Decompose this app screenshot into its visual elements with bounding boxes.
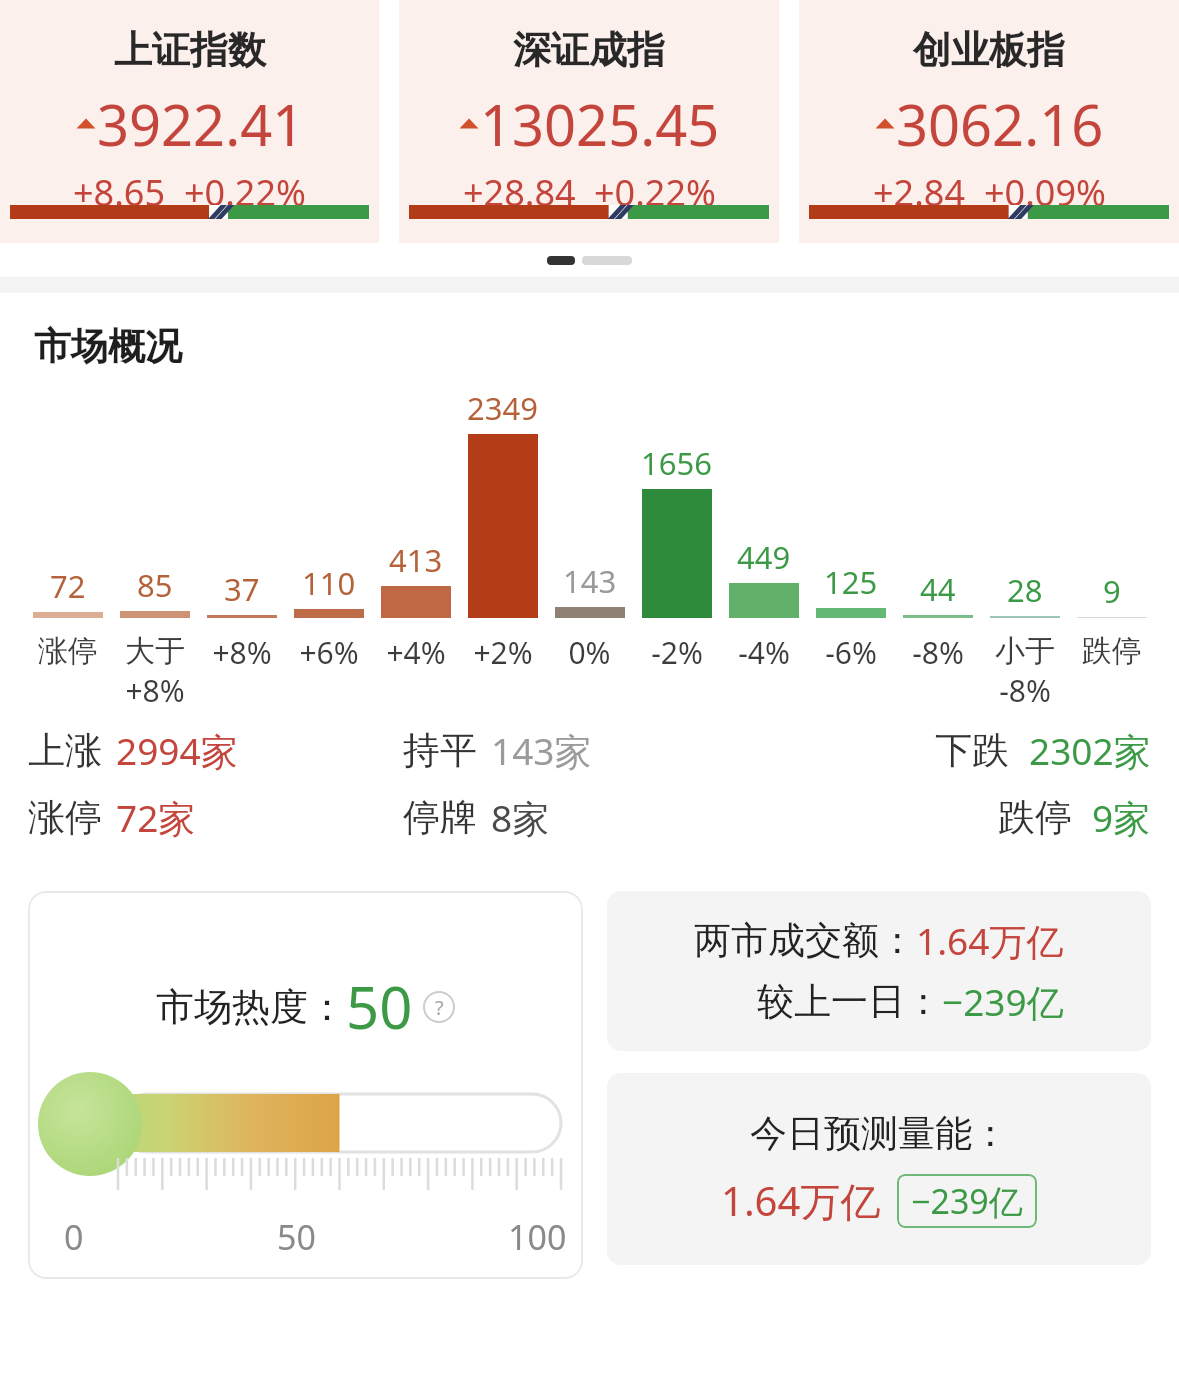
staticText: 0 <box>64 1214 84 1260</box>
staticText: 50 <box>346 967 413 1046</box>
staticText: +2.84 <box>873 168 966 217</box>
staticText: 跌停 <box>1082 632 1142 670</box>
staticText: 市场概况 <box>34 323 182 370</box>
staticText: 449 <box>737 536 791 578</box>
staticText: 1.64万亿 <box>721 1173 881 1228</box>
button[interactable]: 创业板指 <box>799 0 1179 243</box>
staticText: 上证指数 <box>114 26 266 74</box>
staticText: 9 <box>1103 570 1121 612</box>
staticText: 持平 <box>403 727 477 774</box>
staticText: +8% <box>125 670 185 711</box>
button[interactable]: 帮助 <box>423 991 455 1023</box>
staticText: 2994家 <box>116 725 238 776</box>
staticText: 2302家 <box>1029 725 1151 776</box>
staticText: 小于 <box>995 632 1055 670</box>
staticText: 72 <box>50 565 86 607</box>
staticText: +0.22% <box>184 168 306 217</box>
staticText: 较上一日： <box>757 978 942 1025</box>
staticText: 28 <box>1007 569 1043 611</box>
staticText: 72家 <box>116 792 196 843</box>
button[interactable]: 市场热度： <box>28 891 583 1279</box>
staticText: +0.22% <box>594 168 716 217</box>
staticText: 413 <box>389 539 443 581</box>
staticText: 市场热度： <box>156 983 346 1031</box>
staticText: 125 <box>824 561 878 603</box>
staticText: +6% <box>299 632 359 673</box>
staticText: 37 <box>224 568 260 610</box>
staticText: -8% <box>912 632 964 673</box>
staticText: 13025.45 <box>480 86 720 162</box>
staticText: 8家 <box>491 792 550 843</box>
staticText: −239亿 <box>942 976 1064 1027</box>
staticText: 0% <box>568 632 611 673</box>
staticText: 85 <box>137 564 173 606</box>
staticText: 3922.41 <box>97 86 305 162</box>
staticText: 深证成指 <box>513 26 665 74</box>
staticText: 44 <box>920 568 956 610</box>
staticText: 143 <box>563 560 617 602</box>
staticText: -4% <box>738 632 790 673</box>
staticText: 下跌 <box>935 727 1009 774</box>
staticText: -8% <box>999 670 1051 711</box>
staticText: +2% <box>473 632 533 673</box>
staticText: 50 <box>277 1214 316 1260</box>
staticText: 跌停 <box>998 794 1072 841</box>
staticText: 大于 <box>125 632 185 670</box>
staticText: +8.65 <box>73 168 166 217</box>
staticText: +0.09% <box>984 168 1106 217</box>
staticText: 两市成交额： <box>694 917 916 964</box>
button[interactable]: 今日预测量能： <box>607 1073 1151 1265</box>
staticText: 9家 <box>1092 792 1151 843</box>
staticText: 143家 <box>491 725 592 776</box>
staticText: 1656 <box>641 442 712 484</box>
button[interactable]: 深证成指 <box>399 0 779 243</box>
button[interactable]: 两市成交额： <box>607 891 1151 1051</box>
staticText: 涨停 <box>38 632 98 670</box>
staticText: 创业板指 <box>913 26 1065 74</box>
button[interactable]: 上证指数 <box>0 0 379 243</box>
staticText: 今日预测量能： <box>750 1110 1009 1157</box>
staticText: +28.84 <box>463 168 576 217</box>
staticText: 110 <box>302 562 356 604</box>
staticText: +4% <box>386 632 446 673</box>
staticText: ? <box>435 994 444 1021</box>
staticText: 停牌 <box>403 794 477 841</box>
staticText: +8% <box>212 632 272 673</box>
staticText: 100 <box>508 1214 567 1260</box>
staticText: 3062.16 <box>896 86 1104 162</box>
staticText: 上涨 <box>28 727 102 774</box>
staticText: -6% <box>825 632 877 673</box>
staticText: 涨停 <box>28 794 102 841</box>
staticText: 2349 <box>467 387 538 429</box>
staticText: −239亿 <box>911 1178 1023 1224</box>
staticText: -2% <box>651 632 703 673</box>
staticText: 1.64万亿 <box>916 915 1064 966</box>
